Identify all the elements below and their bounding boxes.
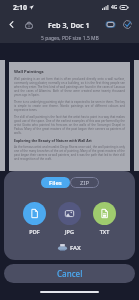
staticText: There is no underlying painting style th… [14, 100, 125, 112]
staticText: PDF [23, 228, 46, 235]
staticText: The skill of wall painting is the fact t… [14, 115, 125, 135]
staticText: Exploring the Beauty of Nature with Wall… [14, 138, 92, 143]
staticText: Files [49, 179, 62, 187]
button[interactable]: Back [3, 16, 20, 33]
staticText: 4G [111, 4, 118, 11]
button[interactable]: FAX [58, 243, 81, 252]
staticText: TXT [93, 228, 116, 235]
staticText: Wall Paintings [14, 69, 44, 75]
staticText: Wall painting is an art form that is oft… [14, 77, 125, 97]
staticText: JPG [58, 228, 81, 235]
button[interactable]: Lock document [20, 16, 37, 33]
button[interactable]: Files [41, 177, 70, 188]
staticText: 5 pages, PDF size 1.5 MB [41, 35, 99, 42]
button[interactable]: TXT [93, 202, 116, 235]
button[interactable]: Cancel [4, 264, 135, 283]
button[interactable]: ZIP [70, 177, 99, 188]
button[interactable]: Done [119, 16, 136, 33]
button[interactable]: JPG [58, 202, 81, 235]
staticText: Feb 3, Doc 1 [48, 20, 90, 30]
staticText: As the famous artist and muralist Diego … [14, 145, 125, 161]
staticText: 2:10 [13, 3, 27, 13]
button[interactable]: PDF [23, 202, 46, 235]
button[interactable]: Crop page [102, 16, 119, 33]
staticText: ZIP [80, 179, 90, 187]
staticText: FAX [70, 244, 81, 252]
staticText: Cancel [57, 268, 83, 279]
